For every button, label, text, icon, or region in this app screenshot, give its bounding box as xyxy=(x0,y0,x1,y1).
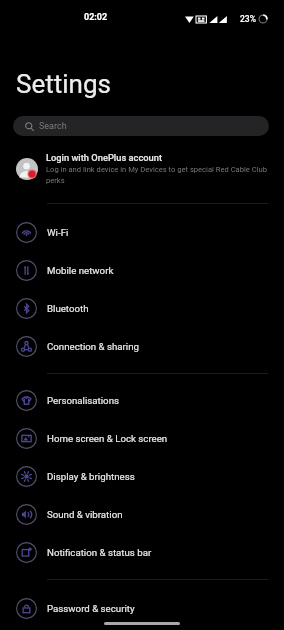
staticText: Password & security xyxy=(47,603,135,614)
staticText: Connection & sharing xyxy=(47,341,140,352)
button[interactable]: Password & security xyxy=(0,589,284,627)
button[interactable]: Home screen & Lock screen xyxy=(0,419,284,457)
button[interactable]: Search xyxy=(13,116,269,136)
staticText: Notification & status bar xyxy=(47,547,152,558)
staticText: Personalisations xyxy=(47,395,119,406)
staticText: Log in and link device in My Devices to … xyxy=(46,165,284,185)
button[interactable]: Notification & status bar xyxy=(0,533,284,571)
button[interactable]: Personalisations xyxy=(0,381,284,419)
other: Mobile network xyxy=(16,260,37,281)
other: Password & security xyxy=(16,598,37,619)
staticText: Login with OnePlus account xyxy=(46,152,163,163)
button[interactable]: Mobile network xyxy=(0,251,284,289)
button[interactable]: Display & brightness xyxy=(0,457,284,495)
other: Sound & vibration xyxy=(16,504,37,525)
other: Wi-Fi xyxy=(16,222,37,243)
staticText: 23% xyxy=(240,14,256,24)
button[interactable]: Sound & vibration xyxy=(0,495,284,533)
staticText: Wi-Fi xyxy=(47,227,69,238)
staticText: 02:02 xyxy=(84,12,108,23)
other: Notification & status bar xyxy=(16,542,37,563)
other: Home screen & Lock screen xyxy=(16,428,37,449)
button[interactable]: Bluetooth xyxy=(0,289,284,327)
staticText: Search xyxy=(39,121,67,132)
staticText: Bluetooth xyxy=(47,303,89,314)
staticText: Settings xyxy=(16,69,111,99)
button[interactable]: Wi-Fi xyxy=(0,213,284,251)
other: Personalisations xyxy=(16,390,37,411)
staticText: Mobile network xyxy=(47,265,114,276)
staticText: Sound & vibration xyxy=(47,509,123,520)
staticText: Display & brightness xyxy=(47,471,135,482)
other: Bluetooth xyxy=(16,298,37,319)
button[interactable]: Connection & sharing xyxy=(0,327,284,365)
staticText: Home screen & Lock screen xyxy=(47,433,168,444)
other: Connection & sharing xyxy=(16,336,37,357)
other: Display & brightness xyxy=(16,466,37,487)
button[interactable]: Login with OnePlus account xyxy=(0,148,284,194)
